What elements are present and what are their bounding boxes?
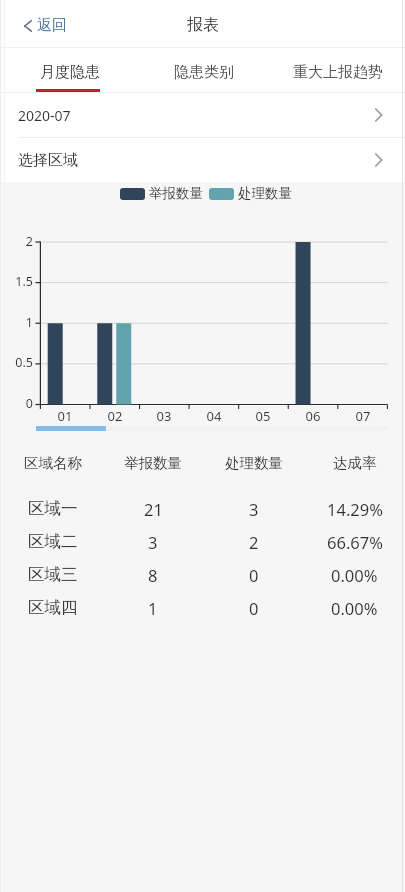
button[interactable]: 区域四 — [3, 591, 405, 624]
staticText: 3 — [249, 498, 259, 520]
staticText: 区域四 — [28, 597, 78, 618]
staticText: 返回 — [37, 16, 67, 35]
other: 展开 — [374, 153, 383, 167]
staticText: 举报数量 — [149, 185, 203, 202]
staticText: 重大上报趋势 — [293, 63, 383, 82]
button[interactable]: 举报数量 — [120, 185, 203, 202]
staticText: 达成率 — [333, 454, 377, 472]
staticText: 01 — [50, 407, 80, 425]
staticText: 2 — [0, 233, 33, 250]
staticText: 1 — [0, 314, 33, 331]
button[interactable]: 选择区域 — [0, 138, 405, 182]
staticText: 处理数量 — [238, 185, 292, 202]
staticText: 0.00% — [331, 597, 378, 619]
staticText: 举报数量 — [124, 454, 182, 472]
staticText: 0.00% — [331, 564, 378, 586]
staticText: 06 — [298, 407, 328, 425]
staticText: 报表 — [187, 15, 219, 35]
button[interactable]: 重大上报趋势 — [271, 48, 405, 93]
staticText: 区域名称 — [24, 454, 82, 472]
button[interactable]: 处理数量 — [209, 185, 292, 202]
staticText: 0 — [0, 395, 33, 412]
staticText: 0 — [249, 564, 259, 586]
staticText: 66.67% — [327, 531, 383, 553]
button[interactable]: 隐患类别 — [137, 48, 271, 93]
staticText: 21 — [144, 498, 163, 520]
staticText: 区域三 — [28, 564, 78, 585]
button[interactable]: 区域二 — [3, 525, 405, 558]
staticText: 2020-07 — [18, 106, 71, 125]
staticText: 1.5 — [0, 273, 33, 290]
staticText: 2 — [249, 531, 259, 553]
staticText: 隐患类别 — [174, 63, 234, 82]
button[interactable]: 月度隐患 — [2, 48, 137, 93]
staticText: 处理数量 — [225, 454, 283, 472]
staticText: 03 — [149, 407, 179, 425]
staticText: 14.29% — [327, 498, 383, 520]
staticText: 07 — [348, 407, 378, 425]
staticText: 05 — [248, 407, 278, 425]
staticText: 04 — [199, 407, 229, 425]
staticText: 0 — [249, 597, 259, 619]
staticText: 1 — [148, 597, 158, 619]
button[interactable]: 区域一 — [3, 492, 405, 525]
staticText: 0.5 — [0, 354, 33, 371]
button[interactable]: 返回 — [20, 10, 71, 41]
staticText: 区域二 — [28, 531, 78, 552]
staticText: 月度隐患 — [40, 63, 100, 82]
staticText: 区域一 — [28, 498, 78, 519]
staticText: 8 — [148, 564, 158, 586]
other: 返回 — [24, 20, 32, 32]
button[interactable]: 2020-07 — [0, 93, 405, 137]
other: 展开 — [374, 108, 383, 122]
staticText: 02 — [100, 407, 130, 425]
staticText: 3 — [148, 531, 158, 553]
button[interactable]: 区域三 — [3, 558, 405, 591]
staticText: 选择区域 — [18, 151, 78, 170]
